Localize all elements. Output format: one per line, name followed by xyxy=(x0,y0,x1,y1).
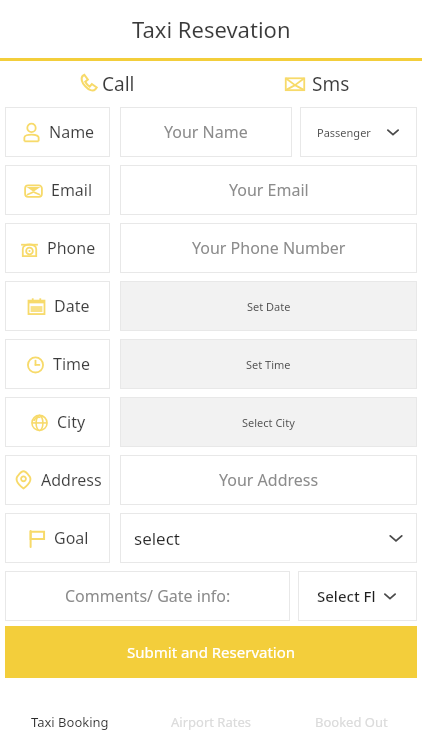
staticText: Your Email xyxy=(229,179,309,201)
button[interactable]: Sms xyxy=(211,61,422,107)
staticText: Select City xyxy=(242,415,295,430)
staticText: City xyxy=(57,411,86,433)
other: Expand xyxy=(387,529,405,547)
staticText: Your Name xyxy=(164,121,248,143)
button[interactable]: Your Phone Number xyxy=(120,223,417,273)
button[interactable]: Taxi Booking xyxy=(0,694,140,750)
staticText: Time xyxy=(53,353,91,375)
staticText: Sms xyxy=(312,71,350,97)
staticText: Goal xyxy=(54,527,89,549)
staticText: Your Address xyxy=(219,469,319,491)
staticText: Taxi Booking xyxy=(31,713,109,731)
button[interactable]: Airport Rates xyxy=(140,694,281,750)
staticText: Airport Rates xyxy=(171,713,251,731)
button[interactable]: Select City xyxy=(120,397,417,447)
button[interactable]: Call xyxy=(0,61,211,107)
button[interactable]: Phone xyxy=(5,223,110,273)
staticText: Name xyxy=(49,121,95,143)
staticText: Comments/ Gate info: xyxy=(65,585,231,607)
staticText: Date xyxy=(54,295,90,317)
staticText: Call xyxy=(102,71,135,97)
button[interactable]: Date xyxy=(5,281,110,331)
staticText: Submit and Reservation xyxy=(127,642,296,662)
staticText: Set Date xyxy=(247,299,291,314)
button[interactable]: Address xyxy=(5,455,110,505)
button[interactable]: Name xyxy=(5,107,110,157)
staticText: Email xyxy=(51,179,93,201)
staticText: Passenger xyxy=(317,125,371,140)
button[interactable]: City xyxy=(5,397,110,447)
staticText: select xyxy=(134,527,181,550)
button[interactable]: Set Date xyxy=(120,281,417,331)
staticText: Taxi Resevation xyxy=(132,14,291,44)
button[interactable]: Time xyxy=(5,339,110,389)
staticText: Set Time xyxy=(246,357,291,372)
button[interactable]: Booked Out xyxy=(281,694,422,750)
button[interactable]: Your Name xyxy=(120,107,292,157)
button[interactable]: Comments/ Gate info: xyxy=(5,571,290,621)
button[interactable]: select xyxy=(120,513,417,563)
button[interactable]: Email xyxy=(5,165,110,215)
button[interactable]: Your Email xyxy=(120,165,417,215)
button[interactable]: Select Fl xyxy=(298,571,417,621)
button[interactable]: Your Address xyxy=(120,455,417,505)
staticText: Booked Out xyxy=(315,713,388,731)
staticText: Select Fl xyxy=(317,586,376,606)
button[interactable]: Goal xyxy=(5,513,110,563)
staticText: Phone xyxy=(47,237,96,259)
button[interactable]: Passenger xyxy=(300,107,417,157)
button[interactable]: Set Time xyxy=(120,339,417,389)
staticText: Address xyxy=(41,469,102,491)
staticText: Your Phone Number xyxy=(192,237,346,259)
button[interactable]: Submit and Reservation xyxy=(5,626,417,678)
